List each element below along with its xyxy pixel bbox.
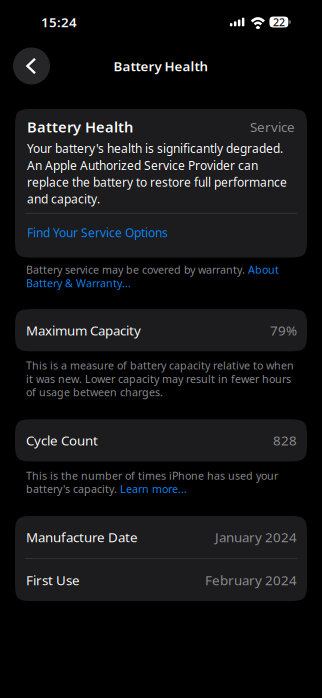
staticText: Maximum Capacity: [26, 321, 141, 339]
staticText: Cycle Count: [26, 431, 98, 449]
button[interactable]: Cycle Count: [15, 419, 307, 461]
staticText: Your battery's health is significantly d…: [27, 140, 287, 207]
button[interactable]: Find Your Service Options: [15, 214, 307, 258]
staticText: Manufacture Date: [26, 528, 138, 546]
staticText: 15:24: [41, 13, 77, 31]
button[interactable]: Maximum Capacity: [15, 309, 307, 351]
button[interactable]: Back: [13, 47, 50, 84]
staticText: First Use: [26, 571, 80, 589]
staticText: This is a measure of battery capacity re…: [26, 358, 294, 399]
staticText: Battery Health: [27, 117, 133, 136]
staticText: Find Your Service Options: [27, 225, 168, 240]
staticText: 828: [273, 431, 297, 449]
staticText: Battery service may be covered by warran…: [26, 263, 279, 290]
staticText: This is the number of times iPhone has u…: [26, 468, 278, 496]
staticText: Service: [250, 118, 295, 136]
staticText: Battery Health: [113, 57, 208, 75]
button[interactable]: Manufacture Date: [15, 516, 307, 558]
staticText: January 2024: [215, 528, 297, 546]
staticText: 79%: [270, 321, 297, 339]
staticText: February 2024: [205, 571, 297, 589]
button[interactable]: First Use: [15, 559, 307, 601]
staticText: 22: [273, 15, 285, 29]
